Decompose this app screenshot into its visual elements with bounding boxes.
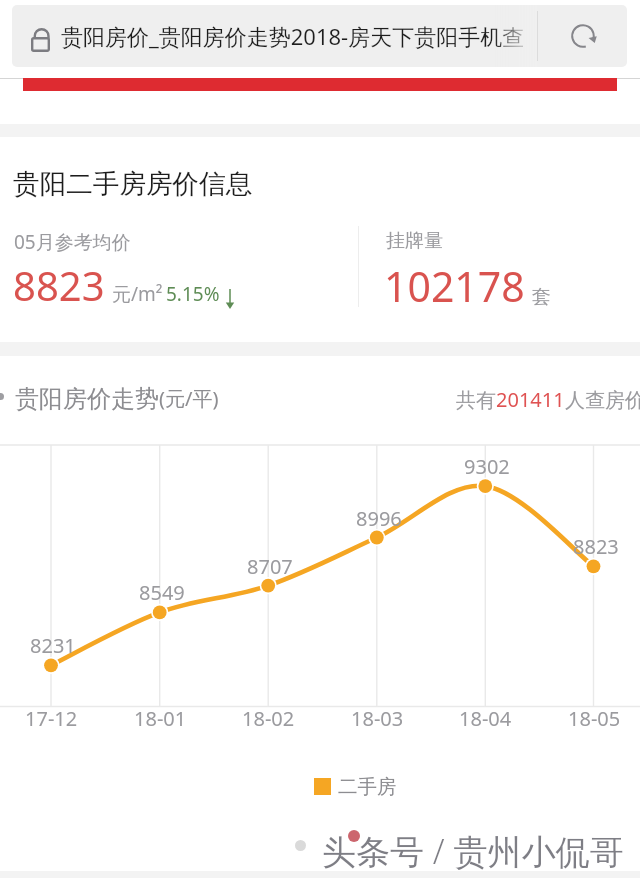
button[interactable]: 贵阳二手房房价信息 bbox=[13, 167, 253, 201]
staticText: 8231 bbox=[30, 632, 76, 659]
staticText: 套 bbox=[532, 285, 551, 309]
staticText: 18-01 bbox=[134, 705, 187, 732]
staticText: 8823 bbox=[13, 258, 105, 312]
staticText: 挂牌量 bbox=[386, 229, 443, 253]
button[interactable]: 贵阳房价_贵阳房价走势2018-房天下贵阳手机查 bbox=[12, 5, 627, 67]
staticText: 二手房 bbox=[338, 774, 397, 799]
staticText: (元/平) bbox=[159, 385, 219, 412]
staticText: 8996 bbox=[356, 505, 402, 532]
staticText: 05月参考均价 bbox=[14, 229, 131, 255]
staticText: 18-05 bbox=[568, 705, 621, 732]
staticText: 201411 bbox=[496, 386, 565, 413]
staticText: 18-02 bbox=[242, 705, 295, 732]
staticText: 18-04 bbox=[459, 705, 512, 732]
button[interactable]: 二手房 bbox=[314, 774, 397, 799]
button[interactable]: Reload page bbox=[538, 5, 627, 67]
staticText: 8707 bbox=[247, 553, 293, 580]
staticText: 18-03 bbox=[351, 705, 404, 732]
staticText: 8823 bbox=[573, 533, 619, 560]
staticText: 17-12 bbox=[25, 705, 78, 732]
staticText: 头条号 / 贵州小侃哥 bbox=[322, 828, 624, 874]
staticText: 元/m² bbox=[112, 281, 163, 307]
staticText: 贵阳房价走势 bbox=[15, 384, 159, 414]
staticText: 共有 bbox=[456, 388, 496, 413]
staticText: 贵阳房价_贵阳房价走势2018-房天下贵阳手机查 bbox=[61, 21, 525, 51]
staticText: 9302 bbox=[464, 453, 510, 480]
staticText: 人查房价 bbox=[565, 388, 640, 413]
staticText: 5.15% bbox=[166, 281, 220, 307]
staticText: 102178 bbox=[384, 258, 525, 314]
staticText: 8549 bbox=[139, 579, 185, 606]
